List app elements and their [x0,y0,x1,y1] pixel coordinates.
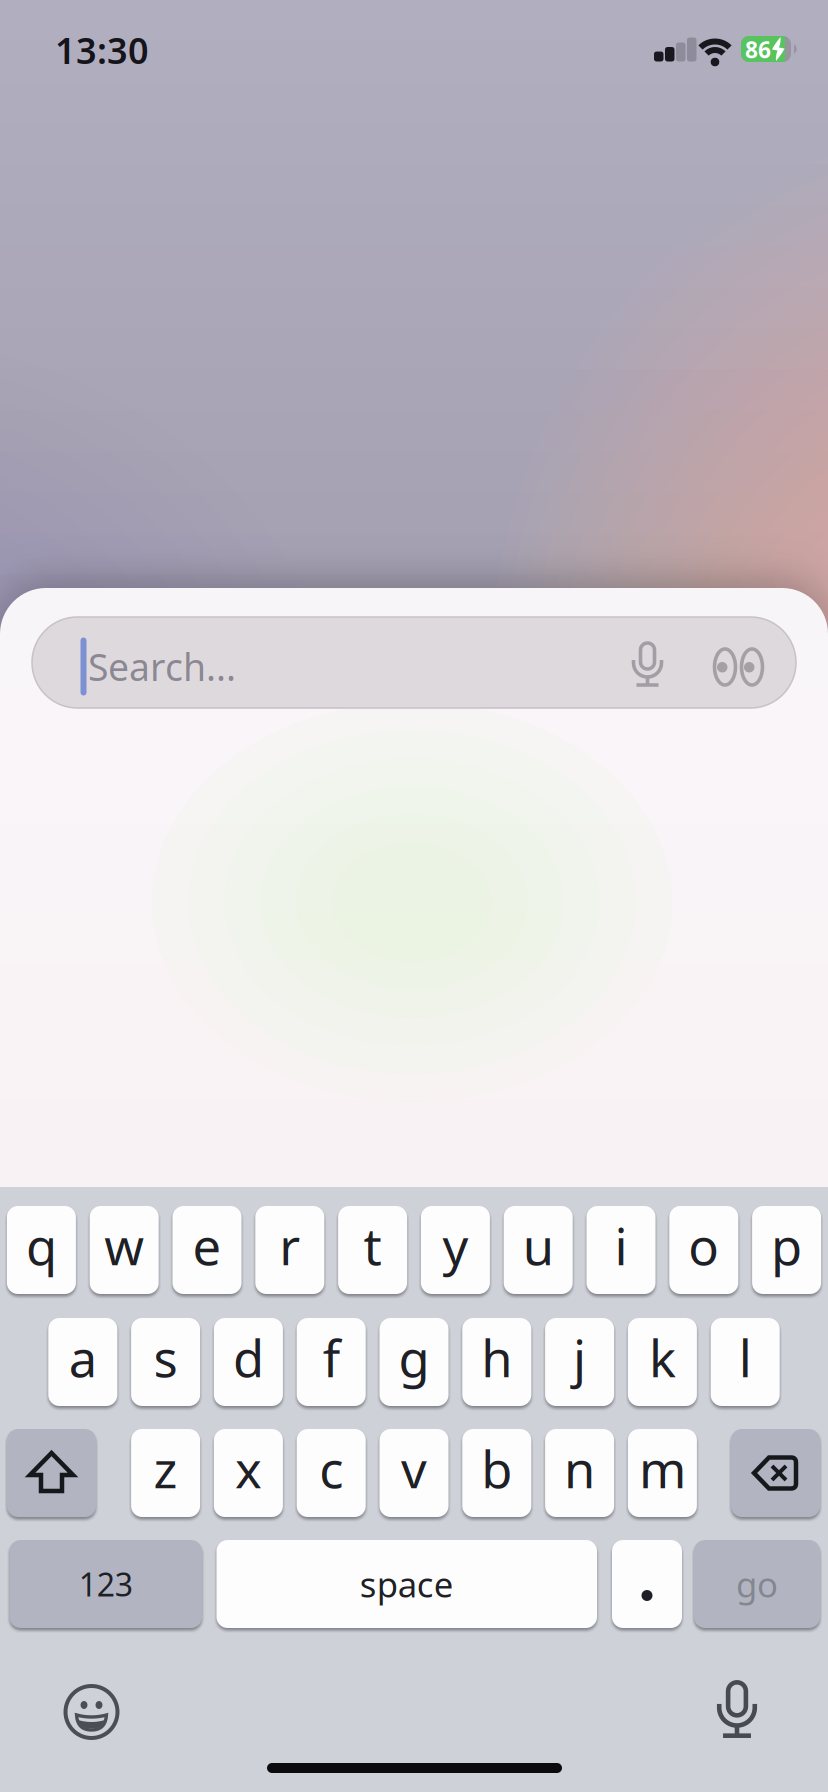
staticText: Search... [88,642,236,691]
button[interactable]: Dictation [707,1677,767,1747]
staticText: p [771,1212,802,1279]
staticText: c [319,1435,343,1502]
button[interactable]: w [90,1206,159,1294]
button[interactable]: go [694,1540,820,1628]
staticText: v [401,1435,427,1502]
button[interactable]: n [545,1429,614,1517]
button[interactable]: Shift [7,1429,96,1517]
button[interactable]: Dictation [617,632,677,702]
staticText: x [235,1435,262,1502]
button[interactable]: r [255,1206,324,1294]
button[interactable]: f [297,1318,366,1406]
button[interactable]: x [214,1429,283,1517]
button[interactable]: g [379,1318,448,1406]
button[interactable]: h [462,1318,531,1406]
button[interactable]: Browse [699,632,775,702]
button[interactable]: t [338,1206,407,1294]
staticText: r [279,1212,300,1279]
staticText: 13:30 [55,26,149,74]
staticText: m [639,1435,686,1502]
staticText: u [523,1212,554,1279]
button[interactable]: i [586,1206,655,1294]
button[interactable]: 123 [9,1540,202,1628]
staticText: o [688,1212,719,1279]
staticText: h [481,1324,512,1391]
button[interactable]: l [711,1318,780,1406]
staticText: q [26,1212,57,1279]
staticText: 123 [79,1563,133,1605]
button[interactable]: Delete [731,1429,820,1517]
button[interactable]: Period [612,1540,682,1628]
button[interactable]: space [216,1540,597,1628]
button[interactable]: p [752,1206,821,1294]
staticText: n [564,1435,595,1502]
staticText: k [649,1324,676,1391]
button[interactable]: b [462,1429,531,1517]
staticText: l [739,1324,752,1391]
staticText: s [154,1324,178,1391]
button[interactable]: j [545,1318,614,1406]
button[interactable]: y [421,1206,490,1294]
button[interactable]: v [379,1429,448,1517]
button[interactable]: c [297,1429,366,1517]
button[interactable]: s [131,1318,200,1406]
staticText: space [360,1561,454,1607]
staticText: a [69,1324,97,1391]
staticText: e [192,1212,221,1279]
button[interactable]: u [504,1206,573,1294]
button[interactable]: m [628,1429,697,1517]
button[interactable]: d [214,1318,283,1406]
staticText: g [398,1324,429,1391]
button[interactable]: Search [32,617,796,708]
staticText: y [442,1212,468,1279]
button[interactable]: e [172,1206,241,1294]
button[interactable]: q [7,1206,76,1294]
staticText: z [154,1435,178,1502]
staticText: b [481,1435,512,1502]
staticText: i [614,1212,627,1279]
button[interactable]: z [131,1429,200,1517]
staticText: 86 [745,34,771,64]
button[interactable]: k [628,1318,697,1406]
button[interactable]: a [48,1318,117,1406]
button[interactable]: o [669,1206,738,1294]
button[interactable]: Emoji [56,1677,126,1747]
staticText: w [104,1212,144,1279]
staticText: t [364,1212,382,1279]
staticText: go [736,1561,778,1607]
staticText: d [233,1324,264,1391]
staticText: f [323,1324,340,1391]
staticText: j [573,1324,586,1391]
